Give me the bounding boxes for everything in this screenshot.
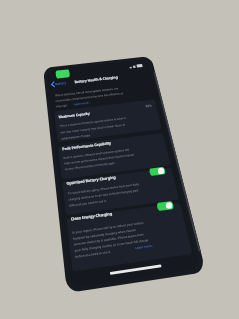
other: Photo of an iPhone showing Battery Healt…	[0, 0, 239, 319]
